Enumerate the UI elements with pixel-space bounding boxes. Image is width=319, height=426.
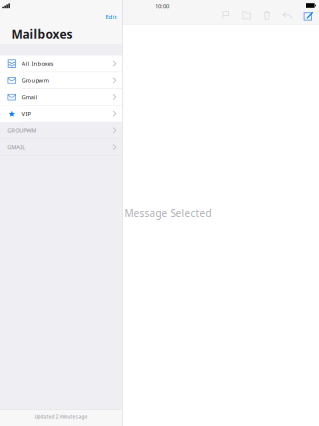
button[interactable]: GROUPWM <box>0 122 122 139</box>
staticText: VIP <box>21 110 31 118</box>
staticText: Groupwm <box>21 76 48 84</box>
staticText: Mailboxes <box>11 26 72 42</box>
button[interactable]: Compose <box>303 10 314 20</box>
staticText: 10:00 <box>155 2 169 10</box>
button[interactable]: Flag <box>221 10 232 20</box>
button[interactable]: GMAIL <box>0 139 122 156</box>
staticText: Updated 2 minutes ago <box>34 413 87 420</box>
staticText: All Inboxes <box>21 60 53 67</box>
button[interactable]: All Inboxes <box>0 55 122 72</box>
staticText: Edit <box>105 12 116 21</box>
staticText: No Message Selected <box>107 206 211 220</box>
button[interactable]: Delete <box>262 10 273 20</box>
staticText: GROUPWM <box>7 126 36 134</box>
button[interactable]: Move to folder <box>241 10 252 20</box>
button[interactable]: Edit <box>105 0 122 21</box>
staticText: GMAIL <box>7 143 25 151</box>
staticText: Gmail <box>21 93 37 101</box>
button[interactable]: VIP <box>0 106 122 122</box>
button[interactable]: Groupwm <box>0 72 122 89</box>
button[interactable]: Gmail <box>0 89 122 106</box>
button[interactable]: Reply <box>282 10 293 20</box>
